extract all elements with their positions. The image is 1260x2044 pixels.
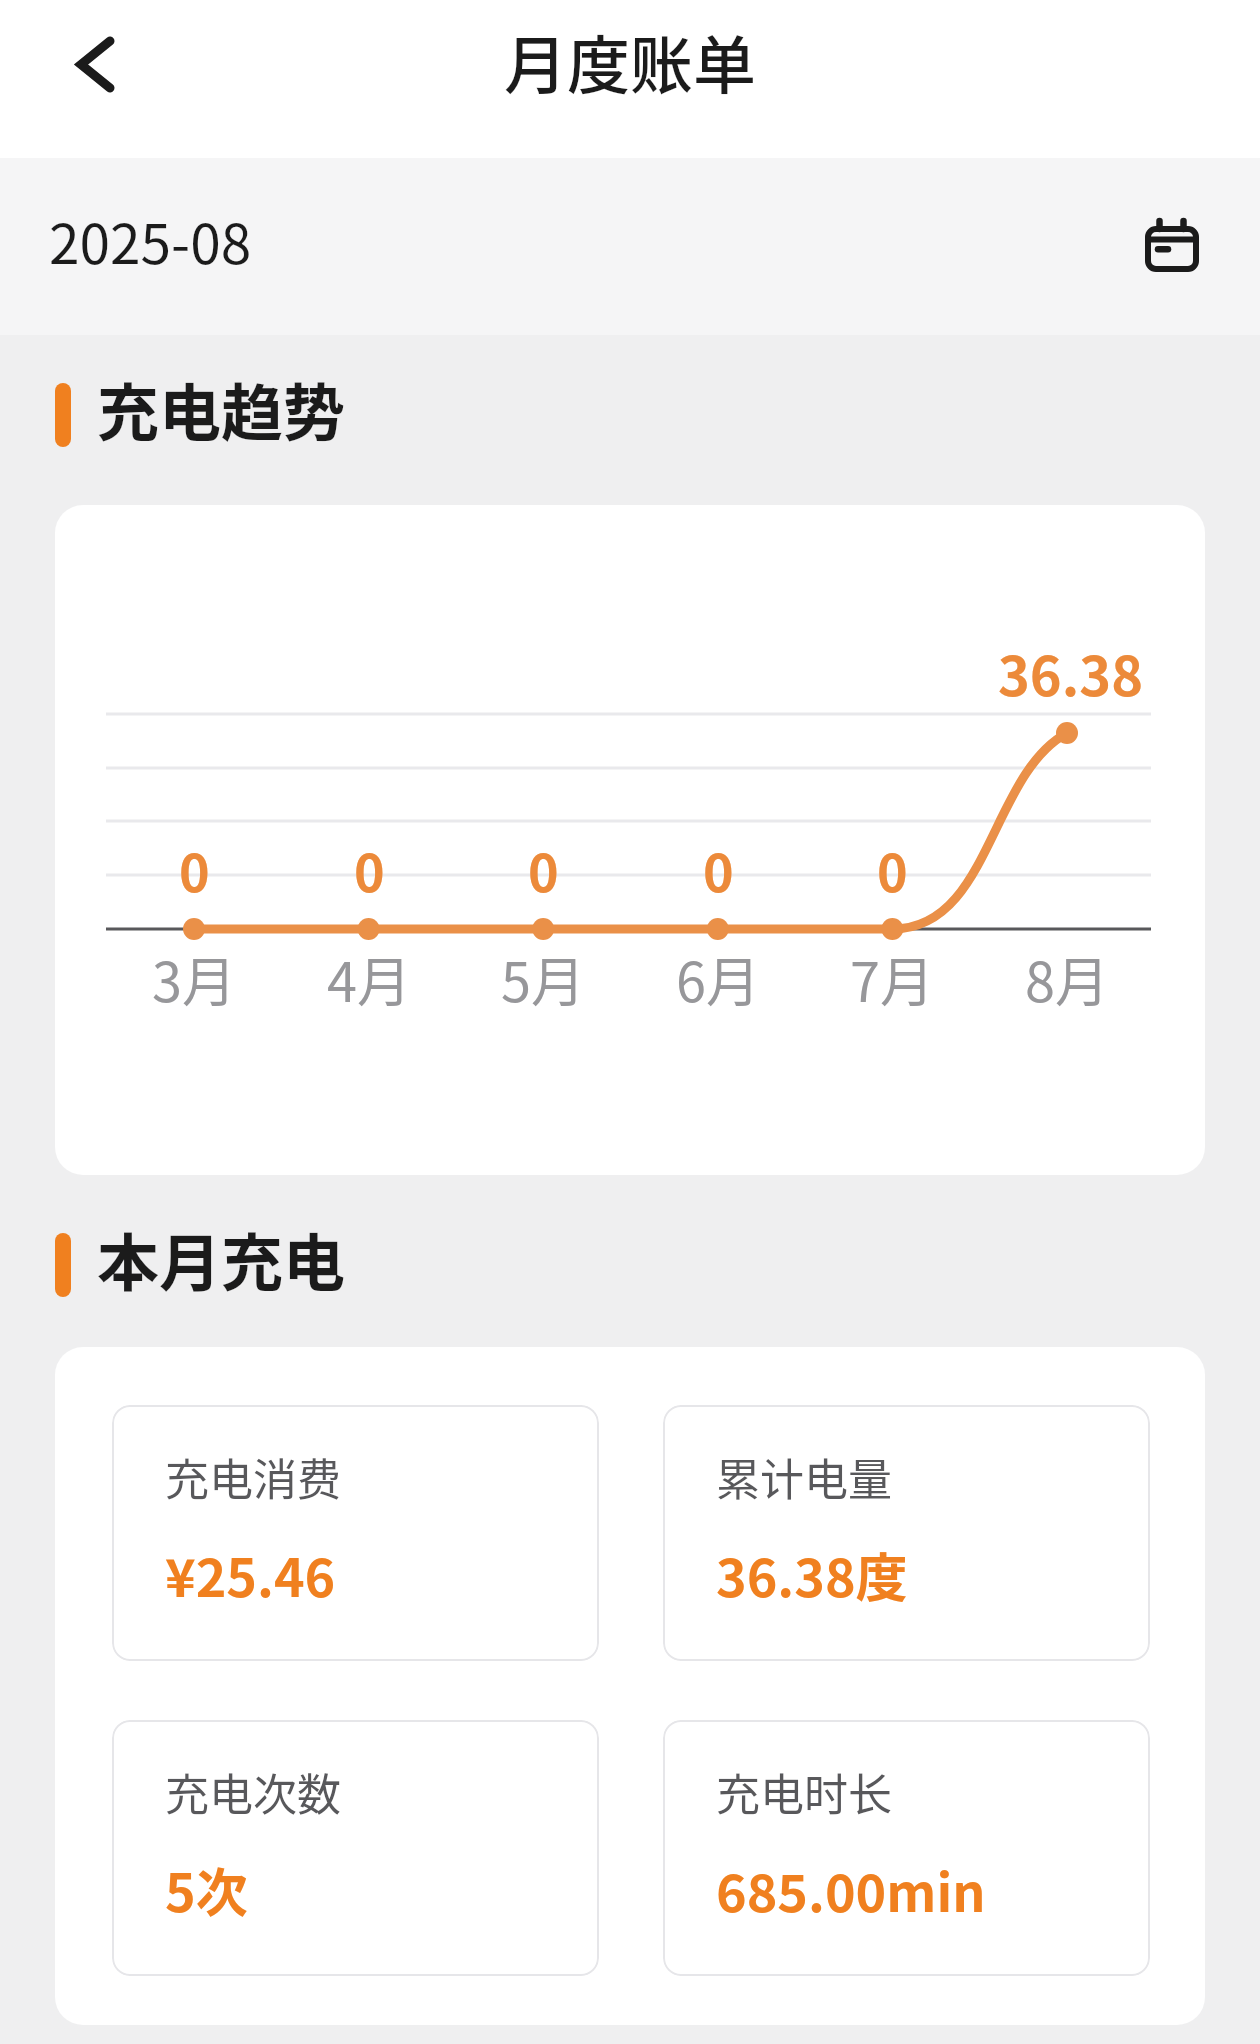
staticText: 3月 <box>152 939 236 1017</box>
staticText: 0 <box>703 832 734 907</box>
staticText: 685.00min <box>716 1852 986 1927</box>
staticText: 0 <box>179 832 210 907</box>
button[interactable]: 充电消费 <box>112 1405 599 1661</box>
staticText: 累计电量 <box>716 1445 892 1509</box>
staticText: ¥25.46 <box>165 1537 336 1612</box>
staticText: 本月充电 <box>97 1214 346 1304</box>
button[interactable]: 累计电量 <box>663 1405 1150 1661</box>
staticText: 充电消费 <box>165 1445 341 1509</box>
staticText: 2025-08 <box>49 200 252 280</box>
staticText: 充电趋势 <box>97 364 346 454</box>
staticText: 4月 <box>327 939 411 1017</box>
staticText: 36.38度 <box>716 1537 908 1612</box>
staticText: 0 <box>877 832 908 907</box>
button[interactable]: 充电次数 <box>112 1720 599 1976</box>
staticText: 36.38 <box>998 633 1143 711</box>
staticText: 6月 <box>676 939 760 1017</box>
staticText: 充电次数 <box>165 1760 341 1824</box>
button[interactable] <box>57 17 132 112</box>
button[interactable]: 充电时长 <box>663 1720 1150 1976</box>
staticText: 月度账单 <box>504 15 756 106</box>
staticText: 0 <box>528 832 559 907</box>
staticText: 充电时长 <box>716 1760 892 1824</box>
button[interactable]: 2025-08 <box>0 158 1260 335</box>
staticText: 8月 <box>1025 939 1109 1017</box>
staticText: 5次 <box>165 1852 248 1927</box>
staticText: 0 <box>354 832 385 907</box>
staticText: 5月 <box>501 939 585 1017</box>
staticText: 7月 <box>850 939 934 1017</box>
